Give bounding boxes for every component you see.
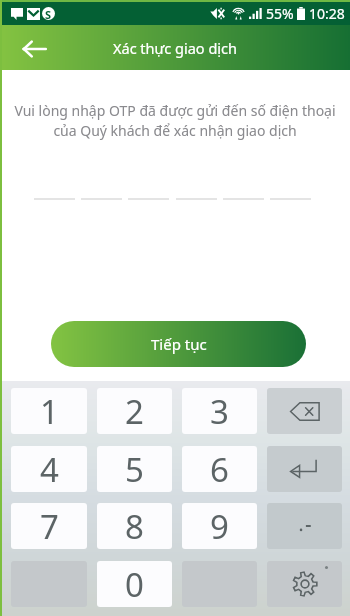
button[interactable]: 1 <box>11 388 87 434</box>
button[interactable]: 5 <box>97 446 172 492</box>
staticText: 2 <box>125 389 144 434</box>
staticText: 8 <box>125 504 144 549</box>
staticText: 4 <box>40 447 59 492</box>
staticText: 6 <box>210 447 229 492</box>
button[interactable]: gear <box>267 561 342 607</box>
staticText: 3 <box>210 389 229 434</box>
button[interactable]: dot <box>267 503 342 549</box>
staticText: Xác thực giao dịch <box>113 38 237 58</box>
staticText: S <box>45 7 52 20</box>
staticText: 0 <box>125 562 144 607</box>
button[interactable]: 8 <box>97 503 172 549</box>
staticText: 1 <box>40 389 59 434</box>
staticText: 55% <box>266 4 294 23</box>
staticText: 7 <box>40 504 59 549</box>
button[interactable]: Tiếp tục <box>51 321 306 367</box>
button[interactable]: back <box>267 388 342 434</box>
button[interactable]: 2 <box>97 388 172 434</box>
button[interactable]: 7 <box>11 503 87 549</box>
staticText: Tiếp tục <box>151 334 207 354</box>
button[interactable]: 4 <box>11 446 87 492</box>
button[interactable]: enter <box>267 446 342 492</box>
staticText: Vui lòng nhập OTP đã được gửi đến số điệ… <box>10 101 340 140</box>
button[interactable]: Back <box>16 31 52 67</box>
button[interactable]: 9 <box>182 503 257 549</box>
staticText: 9 <box>210 504 229 549</box>
button[interactable]: 3 <box>182 388 257 434</box>
button[interactable]: 6 <box>182 446 257 492</box>
staticText: 5 <box>125 447 144 492</box>
staticText: 10:28 <box>309 4 345 23</box>
button[interactable]: 0 <box>97 561 172 607</box>
